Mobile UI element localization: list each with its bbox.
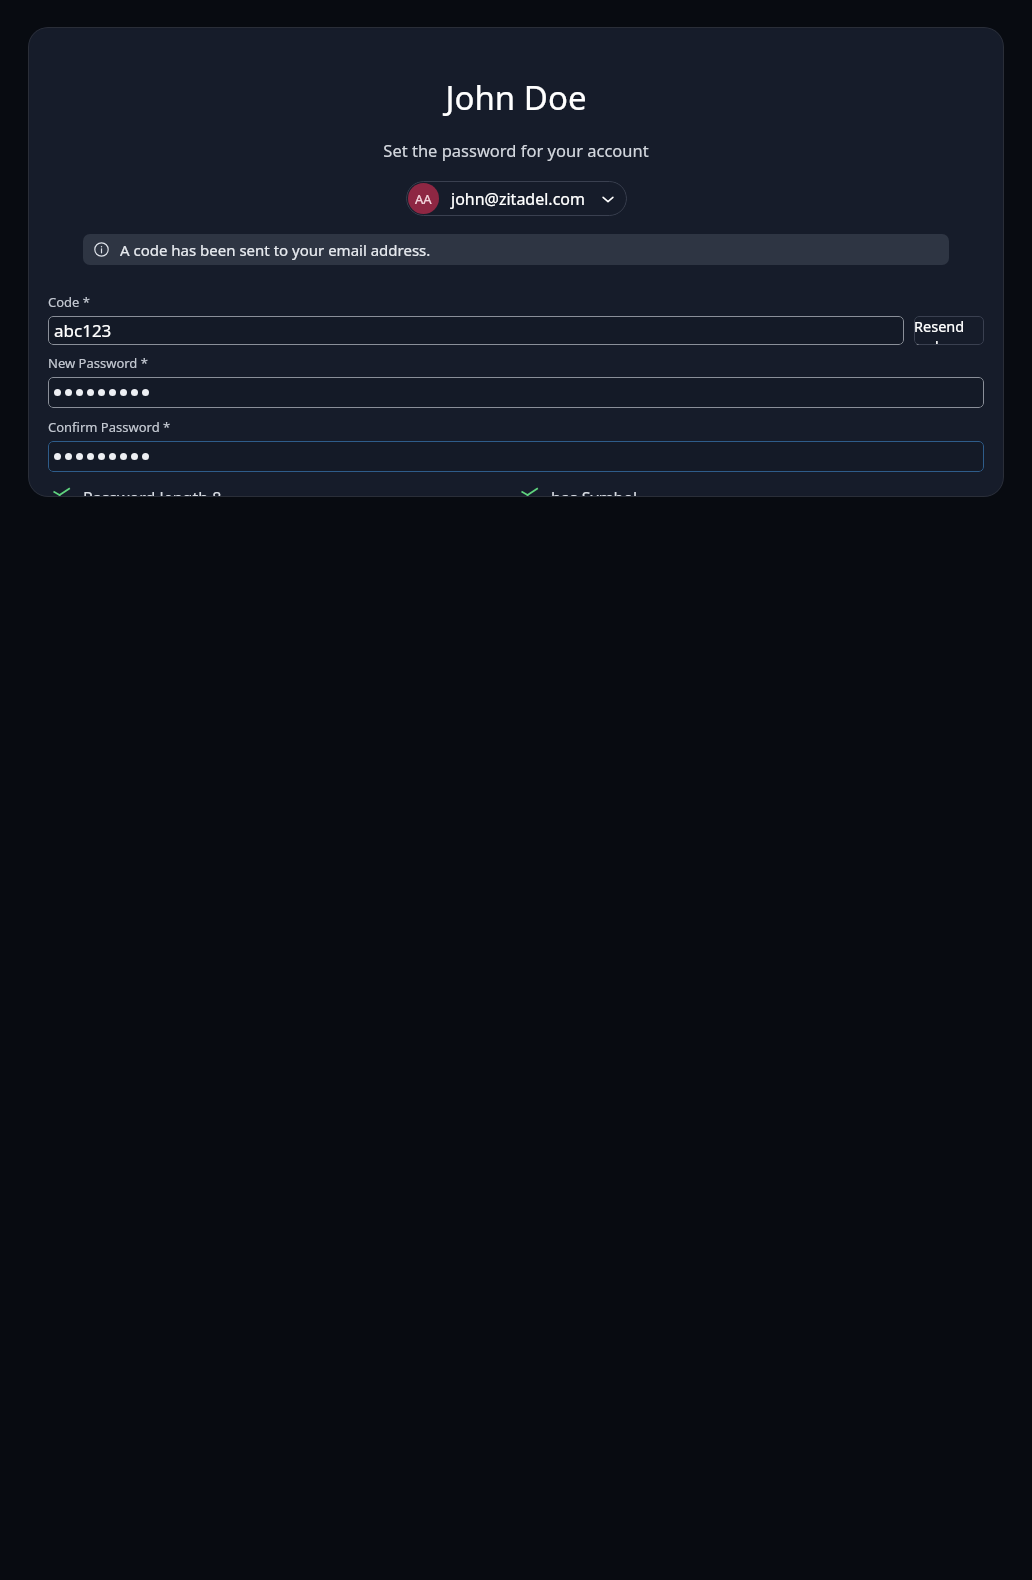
other: Expand account <box>601 192 615 206</box>
staticText: has Symbol <box>551 487 638 497</box>
staticText: Password length 8 <box>83 487 222 497</box>
staticText: A code has been sent to your email addre… <box>120 240 431 260</box>
button[interactable] <box>48 377 984 408</box>
button[interactable]: Resend code <box>914 316 984 345</box>
staticText: Set the password for your account <box>383 139 649 161</box>
button[interactable] <box>48 441 984 472</box>
staticText: New Password * <box>48 354 148 372</box>
staticText: AA <box>415 190 432 208</box>
staticText: john@zitadel.com <box>451 188 585 210</box>
staticText: Code * <box>48 293 90 311</box>
staticText: Resend code <box>914 316 984 345</box>
staticText: abc123 <box>54 319 112 342</box>
button[interactable]: AA <box>406 181 627 216</box>
staticText: Confirm Password * <box>48 418 171 436</box>
staticText: John Doe <box>445 75 587 120</box>
button[interactable]: abc123 <box>48 316 904 345</box>
